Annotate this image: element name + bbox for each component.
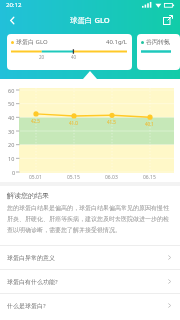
- button[interactable]: Share: [156, 8, 180, 32]
- staticText: 41.5: [107, 119, 116, 125]
- button[interactable]: 球蛋白异常的意义: [0, 246, 180, 269]
- staticText: 06.03: [105, 174, 118, 181]
- staticText: 20:12: [6, 1, 22, 9]
- staticText: 球蛋白 GLO: [70, 15, 110, 25]
- staticText: 球蛋白 GLO: [16, 38, 48, 46]
- staticText: 40: [8, 114, 15, 121]
- staticText: 20: [8, 141, 15, 148]
- button[interactable]: 谷丙转氨: [137, 34, 180, 70]
- staticText: 什么是球蛋白?: [7, 302, 46, 310]
- staticText: 解读您的结果: [7, 191, 49, 200]
- staticText: 41.0: [69, 120, 78, 126]
- button[interactable]: 球蛋白 GLO: [7, 34, 132, 70]
- staticText: 10: [8, 155, 15, 162]
- button[interactable]: Back: [0, 8, 24, 32]
- staticText: 40.1g/L: [106, 38, 127, 46]
- staticText: 20: [39, 54, 45, 60]
- staticText: 您的球蛋白结果是偏高的，球蛋白结果偏高常见的原因有慢性肝炎、肝硬化、肝癌等疾病，…: [7, 204, 173, 234]
- staticText: 球蛋白异常的意义: [7, 254, 55, 262]
- button[interactable]: 球蛋白有什么功能?: [0, 270, 180, 293]
- staticText: 球蛋白有什么功能?: [7, 278, 58, 286]
- staticText: 0: [12, 169, 16, 176]
- staticText: 40: [71, 54, 77, 60]
- button[interactable]: 什么是球蛋白?: [0, 294, 180, 317]
- staticText: 06.15: [143, 174, 156, 181]
- staticText: 谷丙转氨: [146, 38, 170, 46]
- staticText: 42.5: [31, 118, 40, 124]
- staticText: 50: [8, 100, 15, 107]
- staticText: 05.01: [29, 174, 42, 181]
- staticText: 40.1: [145, 121, 154, 127]
- staticText: 60: [8, 87, 15, 94]
- staticText: 05.15: [67, 174, 80, 181]
- staticText: 30: [8, 128, 15, 135]
